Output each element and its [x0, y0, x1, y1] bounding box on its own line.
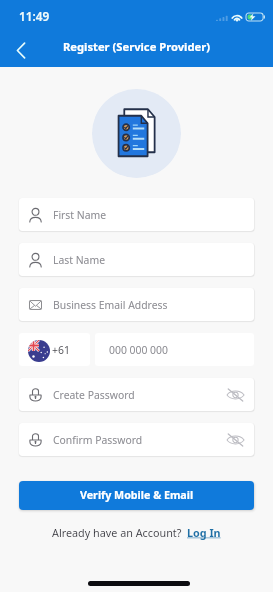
- button[interactable]: Log In: [187, 525, 221, 540]
- button[interactable]: Create Password: [19, 378, 254, 411]
- button[interactable]: Back: [0, 28, 38, 66]
- staticText: Log In: [187, 525, 221, 540]
- button[interactable]: Show confirm password: [224, 428, 247, 452]
- staticText: +61: [52, 343, 70, 357]
- staticText: Confirm Password: [53, 433, 143, 447]
- staticText: First Name: [53, 208, 107, 222]
- staticText: Register (Service Provider): [63, 39, 210, 54]
- staticText: Create Password: [53, 388, 135, 402]
- button[interactable]: Business Email Address: [19, 288, 254, 321]
- button[interactable]: Confirm Password: [19, 423, 254, 456]
- staticText: 11:49: [19, 8, 50, 24]
- button[interactable]: +61: [19, 333, 90, 366]
- staticText: Last Name: [53, 253, 106, 267]
- button[interactable]: Verify Mobile & Email: [19, 481, 254, 510]
- button[interactable]: Show password: [224, 383, 247, 407]
- staticText: Already have an Account?: [52, 525, 182, 540]
- staticText: 000 000 000: [109, 343, 168, 357]
- staticText: Verify Mobile & Email: [80, 488, 194, 503]
- staticText: Business Email Address: [53, 298, 168, 312]
- button[interactable]: First Name: [19, 198, 254, 231]
- button[interactable]: Last Name: [19, 243, 254, 276]
- button[interactable]: 000 000 000: [95, 333, 254, 366]
